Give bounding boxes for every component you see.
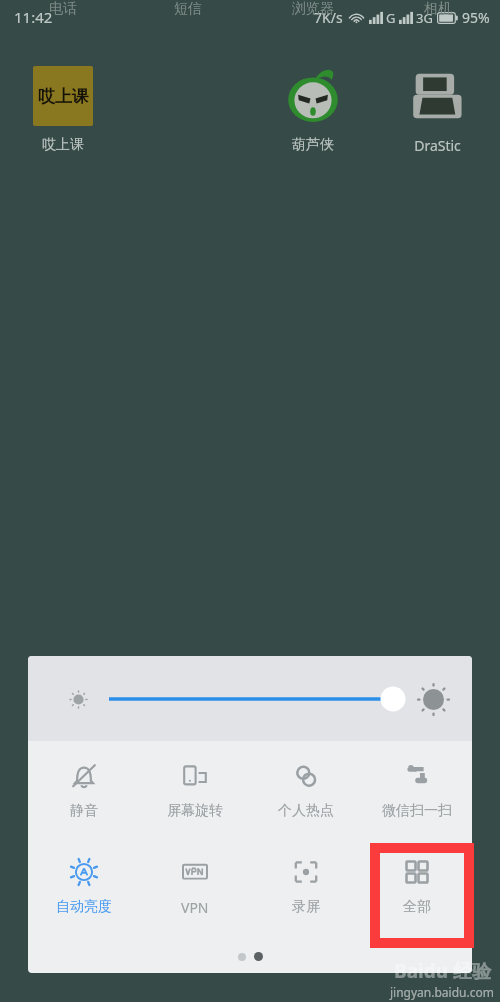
staticText: 3G	[416, 9, 433, 27]
staticText: 自动亮度	[56, 898, 112, 916]
button[interactable]: 自动亮度	[28, 843, 139, 916]
staticText: 录屏	[292, 898, 320, 916]
staticText: jingyan.baidu.com	[390, 984, 494, 1000]
button[interactable]: DraStic	[375, 60, 500, 157]
staticText: 全部	[403, 898, 431, 916]
staticText: 95%	[462, 8, 490, 27]
staticText: 微信扫一扫	[382, 802, 452, 820]
button[interactable]: 个人热点	[250, 747, 361, 820]
staticText: 浏览器	[292, 0, 334, 18]
button[interactable]: 静音	[28, 747, 139, 820]
staticText: 哎上课	[38, 86, 89, 107]
button[interactable]: 屏幕旋转	[139, 747, 250, 820]
button[interactable]: 电话	[0, 0, 125, 18]
button[interactable]: 浏览器	[250, 0, 375, 18]
staticText: 短信	[174, 0, 202, 18]
staticText: 哎上课	[42, 136, 84, 154]
staticText: 7K/s	[314, 8, 343, 27]
button[interactable]: 相机	[375, 0, 500, 18]
staticText: 个人热点	[278, 802, 334, 820]
button[interactable]: 微信扫一扫	[361, 747, 472, 820]
staticText: 静音	[70, 802, 98, 820]
staticText: 电话	[49, 0, 77, 18]
staticText: DraStic	[414, 136, 461, 155]
button[interactable]: 全部	[361, 843, 472, 939]
staticText: 相机	[424, 0, 452, 18]
staticText: G	[386, 9, 396, 27]
button[interactable]: 录屏	[250, 843, 361, 916]
staticText: Baidu 经验	[394, 958, 491, 984]
button[interactable]: 短信	[125, 0, 250, 18]
staticText: 葫芦侠	[292, 136, 334, 154]
button[interactable]: 哎上课	[0, 60, 125, 156]
button[interactable]: 葫芦侠	[250, 60, 375, 156]
button[interactable]: VPN	[139, 843, 250, 917]
staticText: 11:42	[14, 7, 53, 27]
staticText: 屏幕旋转	[167, 802, 223, 820]
staticText: VPN	[181, 898, 209, 917]
